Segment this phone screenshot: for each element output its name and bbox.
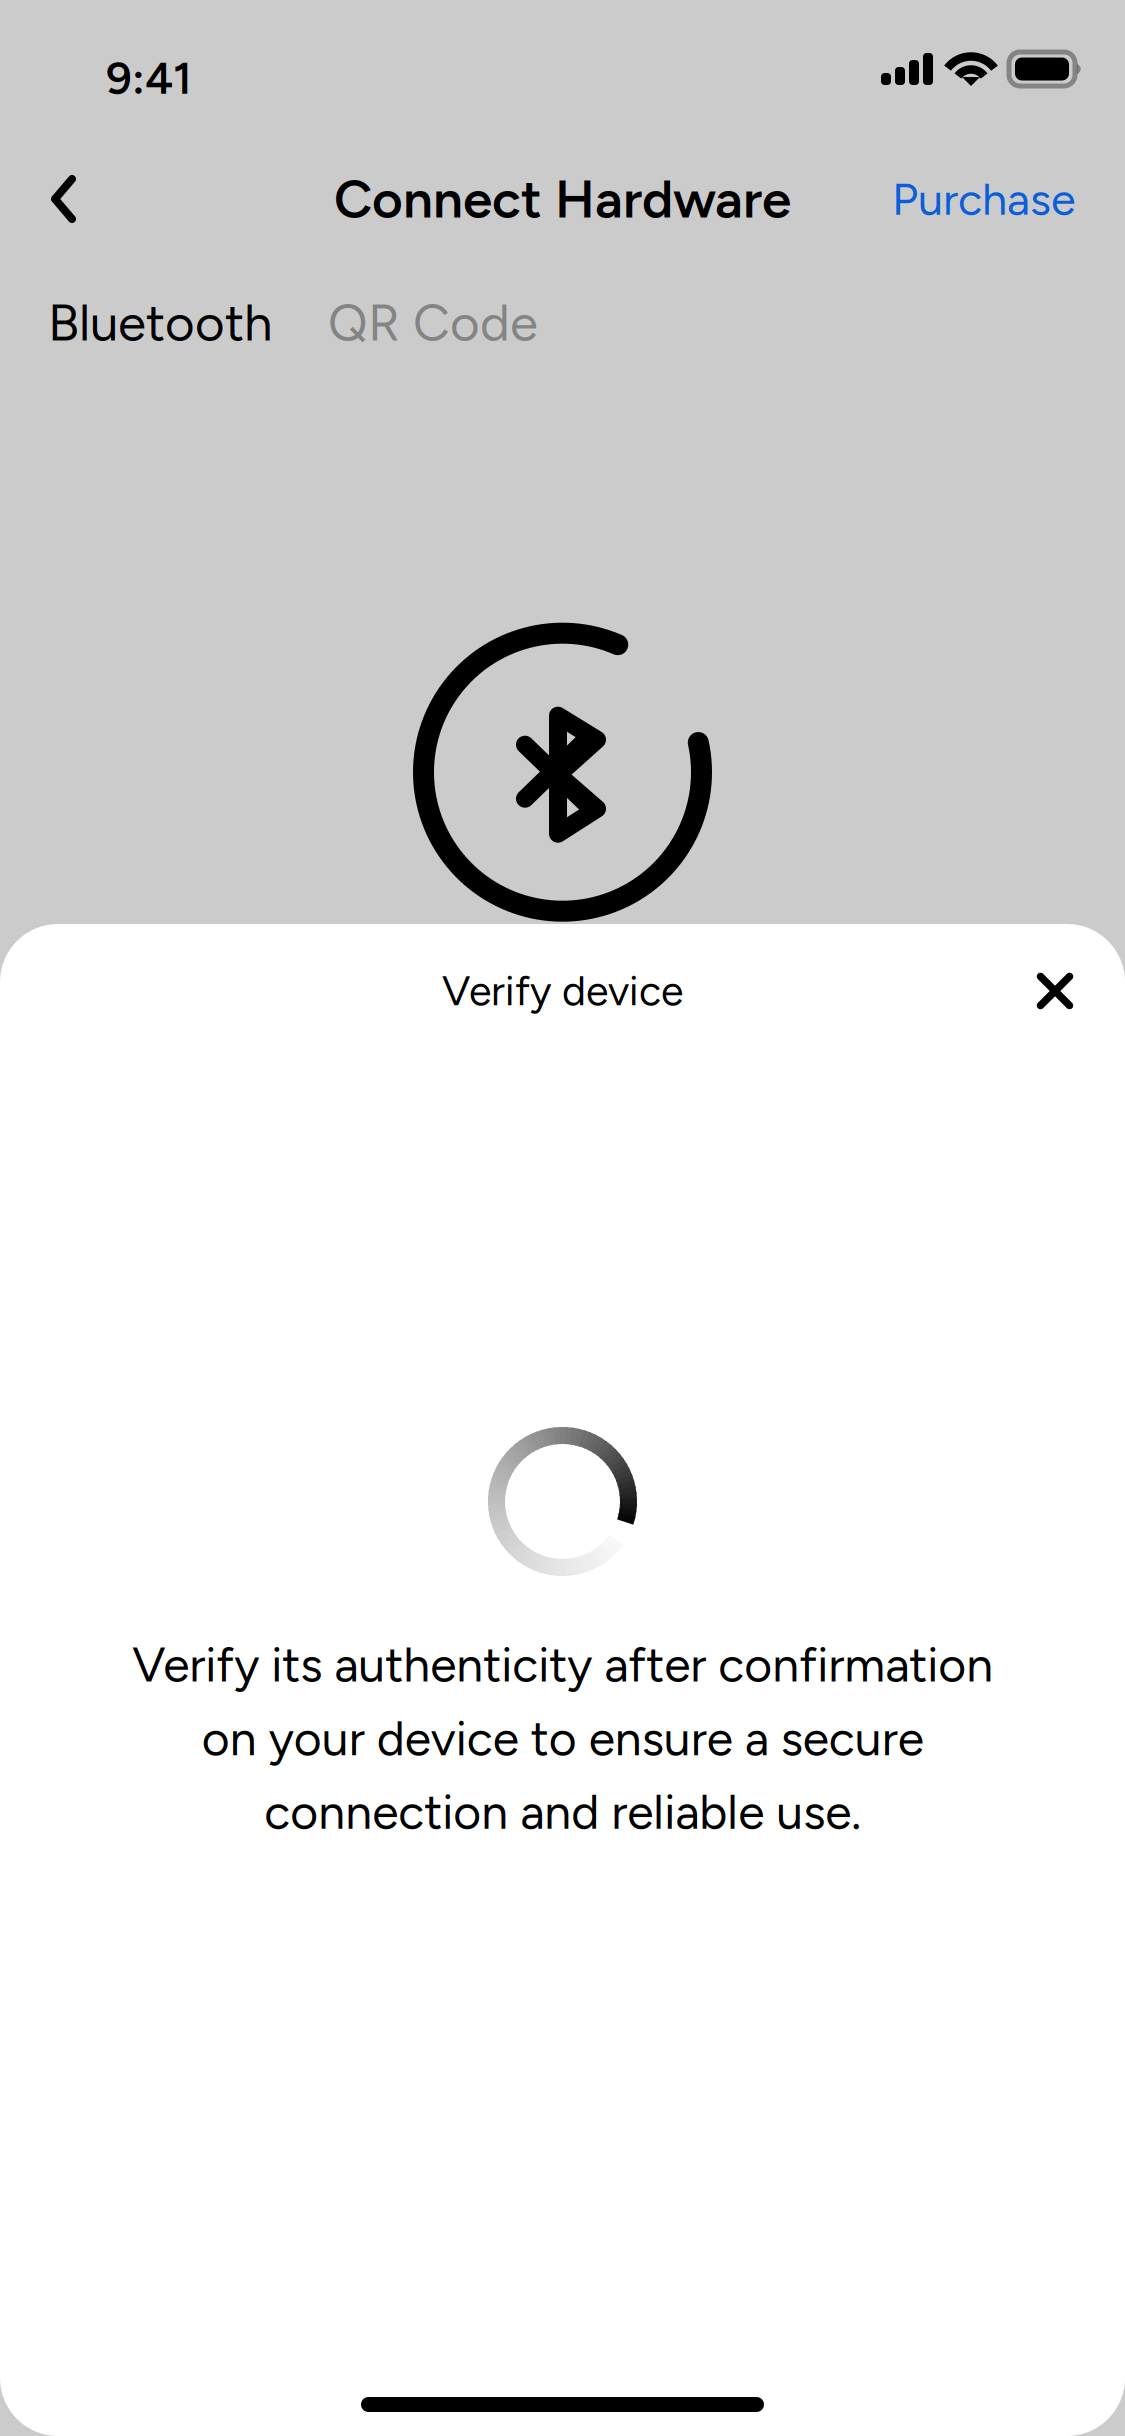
staticText: Connect Hardware <box>334 167 791 231</box>
staticText: Verify device <box>442 966 683 1016</box>
staticText: 9:41 <box>106 51 192 105</box>
staticText: Purchase <box>892 172 1076 226</box>
staticText: Verify its authenticity after confirmati… <box>132 1636 993 1841</box>
button[interactable]: Purchase <box>868 147 1100 251</box>
button[interactable]: QR Code <box>328 280 538 365</box>
button[interactable]: Close <box>1009 945 1101 1037</box>
button[interactable]: Back <box>12 147 116 251</box>
staticText: Bluetooth <box>48 292 272 353</box>
button[interactable]: Bluetooth <box>48 280 272 365</box>
staticText: QR Code <box>328 292 538 353</box>
